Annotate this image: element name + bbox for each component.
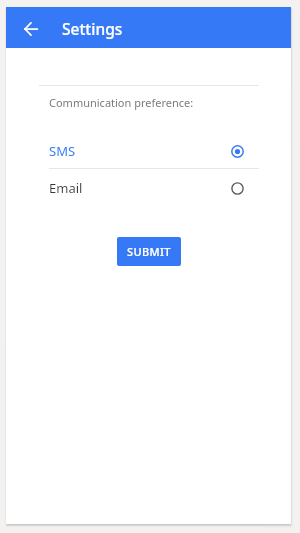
- button[interactable]: Back: [16, 14, 46, 44]
- button[interactable]: Email: [39, 174, 259, 202]
- button[interactable]: SUBMIT: [117, 237, 181, 266]
- staticText: Settings: [62, 18, 123, 39]
- staticText: SMS: [49, 142, 231, 160]
- staticText: Communication preference:: [49, 95, 194, 110]
- staticText: Email: [49, 179, 231, 197]
- staticText: SUBMIT: [127, 244, 171, 259]
- button[interactable]: SMS: [39, 137, 259, 165]
